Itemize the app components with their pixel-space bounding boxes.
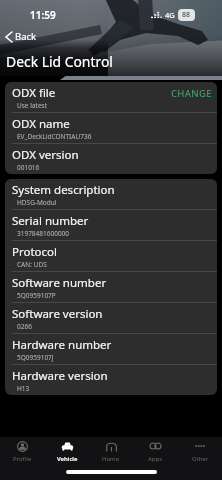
staticText: 5Q0959107P — [17, 291, 56, 300]
button[interactable]: Profile — [0, 440, 44, 463]
button[interactable]: Vehicle — [45, 440, 89, 463]
staticText: Apps — [148, 455, 163, 463]
button[interactable]: Hardware version — [5, 365, 217, 395]
staticText: 88 — [182, 10, 191, 20]
staticText: CHANGE — [171, 87, 212, 100]
staticText: Serial number — [12, 213, 89, 229]
staticText: Back — [15, 30, 37, 43]
staticText: 001016 — [17, 163, 40, 172]
staticText: 5Q0959107J — [17, 353, 54, 362]
staticText: Software number — [12, 275, 107, 291]
staticText: ODX file — [12, 85, 56, 101]
staticText: Other — [192, 455, 209, 463]
staticText: 4G — [165, 10, 175, 20]
staticText: Software version — [12, 306, 103, 322]
button[interactable]: Back — [6, 30, 37, 43]
staticText: Hardware version — [12, 368, 108, 384]
button[interactable]: Apps — [133, 440, 177, 463]
button[interactable]: Protocol — [5, 241, 217, 272]
staticText: System description — [12, 182, 115, 198]
staticText: 31978481600000 — [17, 229, 70, 238]
staticText: Vehicle — [57, 455, 78, 463]
staticText: ODX name — [12, 116, 70, 132]
button[interactable]: Software version — [5, 303, 217, 334]
button[interactable]: ODX name — [5, 113, 217, 144]
staticText: Home — [102, 455, 120, 463]
button[interactable]: Software number — [5, 272, 217, 303]
button[interactable]: Other — [178, 440, 222, 463]
staticText: Deck Lid Control — [6, 52, 113, 71]
staticText: EV_DeckLidCONTIAU736 — [17, 132, 92, 141]
button[interactable]: Hardware number — [5, 334, 217, 365]
staticText: CAN: UDS — [17, 260, 47, 269]
button[interactable]: ODX version — [5, 144, 217, 174]
staticText: Protocol — [12, 244, 57, 260]
staticText: 11:59 — [30, 8, 56, 22]
staticText: 0266 — [17, 322, 32, 331]
staticText: Profile — [13, 455, 32, 463]
staticText: HDSG-Modul — [17, 198, 57, 207]
button[interactable]: Serial number — [5, 210, 217, 241]
button[interactable]: System description — [5, 179, 217, 210]
staticText: Use latest — [17, 101, 48, 110]
staticText: Hardware number — [12, 337, 112, 353]
button[interactable]: Home — [89, 440, 133, 463]
staticText: H13 — [17, 384, 30, 393]
staticText: ODX version — [12, 147, 79, 163]
button[interactable]: ODX file — [5, 82, 217, 113]
